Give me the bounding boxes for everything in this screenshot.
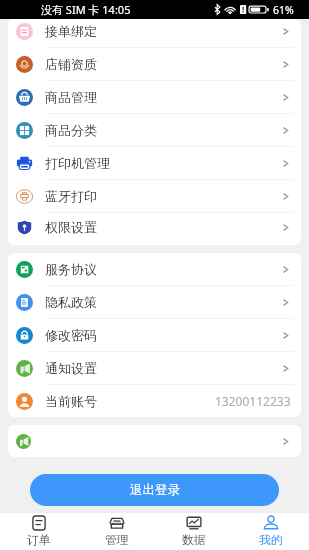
other: Data xyxy=(186,515,202,531)
staticText: 隐私政策 xyxy=(45,294,97,310)
button[interactable]: Mine xyxy=(232,515,309,548)
other: Mine xyxy=(263,515,279,531)
button[interactable]: 服务协议 xyxy=(8,253,301,285)
button[interactable]: 当前账号 xyxy=(8,385,301,417)
button[interactable]: 蓝牙打印 xyxy=(8,180,301,212)
staticText: 接单绑定 xyxy=(45,23,97,39)
staticText: 数据 xyxy=(182,533,206,548)
button[interactable]: 修改密码 xyxy=(8,319,301,351)
staticText: 商品管理 xyxy=(45,89,97,105)
button[interactable]: 店铺资质 xyxy=(8,48,301,80)
button[interactable]: 退出登录 xyxy=(30,474,279,506)
button[interactable]: 隐私政策 xyxy=(8,286,301,318)
staticText: 打印机管理 xyxy=(45,155,110,171)
button[interactable]: 权限设置 xyxy=(8,213,301,241)
staticText: 修改密码 xyxy=(45,327,97,343)
staticText: 管理 xyxy=(105,533,129,548)
button[interactable] xyxy=(8,425,301,457)
staticText: 61% xyxy=(273,3,294,17)
staticText: 我的 xyxy=(259,533,283,548)
other: Orders xyxy=(31,515,47,531)
staticText: 订单 xyxy=(27,533,51,548)
staticText: 店铺资质 xyxy=(45,56,97,72)
button[interactable]: 商品分类 xyxy=(8,114,301,146)
other: Manage xyxy=(109,515,125,531)
button[interactable]: 商品管理 xyxy=(8,81,301,113)
staticText: 服务协议 xyxy=(45,261,97,277)
staticText: 商品分类 xyxy=(45,122,97,138)
staticText: 权限设置 xyxy=(45,219,97,235)
staticText: 没有 SIM 卡 14:05 xyxy=(41,2,131,17)
staticText: 退出登录 xyxy=(130,482,180,498)
button[interactable]: 打印机管理 xyxy=(8,147,301,179)
button[interactable]: Orders xyxy=(0,515,78,548)
staticText: 13200112233 xyxy=(215,393,291,409)
button[interactable]: Manage xyxy=(78,515,155,548)
button[interactable]: Data xyxy=(155,515,232,548)
staticText: 通知设置 xyxy=(45,360,97,376)
button[interactable]: 通知设置 xyxy=(8,352,301,384)
staticText: 当前账号 xyxy=(45,393,97,409)
staticText: 蓝牙打印 xyxy=(45,188,97,204)
button[interactable]: 接单绑定 xyxy=(8,19,301,47)
